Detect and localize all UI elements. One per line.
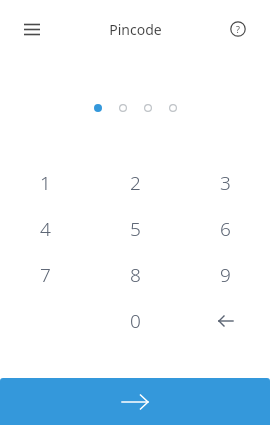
button[interactable]: 7 (0, 252, 90, 298)
button[interactable]: 8 (90, 252, 180, 298)
staticText: 1 (40, 170, 51, 196)
staticText: Pincode (109, 20, 162, 39)
staticText: 5 (130, 216, 141, 242)
button[interactable]: 0 (90, 298, 180, 344)
staticText: 8 (130, 262, 141, 288)
button[interactable]: Help (220, 11, 256, 47)
button[interactable]: Backspace (180, 298, 270, 344)
button[interactable]: 4 (0, 206, 90, 252)
staticText: 4 (40, 216, 51, 242)
button[interactable]: 5 (90, 206, 180, 252)
staticText: 9 (220, 262, 231, 288)
staticText: 2 (130, 170, 141, 196)
button[interactable]: 2 (90, 160, 180, 206)
button[interactable]: 3 (180, 160, 270, 206)
button[interactable]: 9 (180, 252, 270, 298)
staticText: 0 (130, 308, 141, 334)
button[interactable]: 6 (180, 206, 270, 252)
button[interactable]: 1 (0, 160, 90, 206)
button[interactable]: Continue (0, 378, 270, 425)
staticText: 7 (40, 262, 51, 288)
staticText: 6 (220, 216, 231, 242)
button[interactable]: Menu (14, 11, 50, 47)
staticText: 3 (220, 170, 231, 196)
staticText: ? (236, 23, 240, 35)
